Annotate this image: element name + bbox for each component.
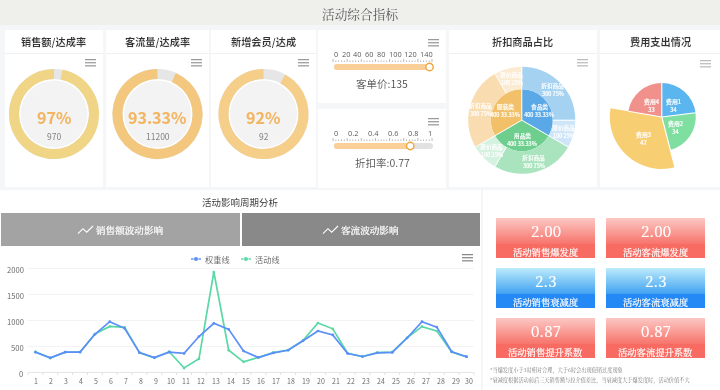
staticText: 20: [317, 376, 325, 386]
staticText: 活动销售提升系数: [508, 345, 583, 358]
staticText: 11: [182, 376, 190, 386]
staticText: 活动线: [255, 253, 280, 265]
staticText: *衰减度根据活动前后三天销售额与拉介值差比，当衰减度大于爆发度时，活动价值不大: [490, 376, 690, 383]
button[interactable]: Chart menu: [577, 59, 588, 67]
staticText: 970: [47, 130, 62, 142]
staticText: 1500: [7, 290, 24, 301]
staticText: 28: [437, 376, 445, 386]
staticText: 92%: [246, 105, 281, 128]
staticText: 原价商品: [500, 71, 523, 79]
staticText: 15: [242, 376, 250, 386]
staticText: 活动综合指标: [322, 4, 399, 22]
staticText: 0.2: [348, 128, 359, 138]
staticText: *当爆发度小于3时相对合理，大于6时会出现促销过度现象: [490, 366, 623, 373]
staticText: 100: [389, 49, 402, 59]
staticText: 活动影响周期分析: [202, 195, 279, 209]
staticText: 活动客流衰减度: [623, 295, 689, 308]
staticText: 费用3: [636, 130, 651, 138]
button[interactable]: 销售额波动影响: [1, 213, 240, 246]
button[interactable]: 2.3: [496, 268, 595, 308]
staticText: 19: [302, 376, 310, 386]
staticText: 食品类: [531, 103, 548, 111]
staticText: 0.87: [641, 320, 671, 342]
staticText: 22: [347, 376, 355, 386]
staticText: 新增会员/达成: [231, 34, 297, 49]
staticText: 300 75%: [542, 90, 564, 98]
staticText: 用品类: [514, 132, 531, 140]
staticText: 0.8: [408, 128, 419, 138]
staticText: 47: [640, 138, 647, 146]
staticText: 客单价:135: [356, 76, 408, 91]
staticText: 2.00: [641, 220, 671, 242]
staticText: 活动销售爆发度: [513, 245, 579, 258]
staticText: 5: [94, 376, 98, 386]
staticText: 100 25%: [481, 151, 503, 159]
button[interactable]: Chart menu: [85, 59, 96, 67]
staticText: 服装类: [497, 103, 514, 111]
staticText: 1000: [7, 316, 24, 327]
staticText: 120: [404, 49, 417, 59]
staticText: 33: [648, 105, 655, 113]
staticText: 原价商品: [552, 124, 575, 132]
staticText: 12: [197, 376, 205, 386]
staticText: 34: [672, 127, 679, 135]
staticText: 93.33%: [128, 105, 187, 128]
button[interactable]: 0.87: [496, 318, 595, 358]
staticText: 400 33.33%: [507, 140, 537, 148]
staticText: 10: [167, 376, 175, 386]
staticText: 活动客流爆发度: [623, 245, 689, 258]
staticText: 2.3: [645, 270, 667, 292]
button[interactable]: Chart menu: [700, 60, 711, 68]
button[interactable]: Chart menu: [462, 254, 473, 262]
staticText: 销售额波动影响: [96, 223, 164, 237]
staticText: 权重线: [205, 253, 230, 265]
staticText: 18: [287, 376, 295, 386]
staticText: 100 25%: [553, 132, 575, 140]
staticText: 客流波动影响: [341, 223, 399, 237]
staticText: 2.3: [535, 270, 557, 292]
staticText: 21: [332, 376, 340, 386]
staticText: 0: [334, 128, 339, 138]
staticText: 1: [34, 376, 38, 386]
staticText: 140: [420, 49, 433, 59]
staticText: 2: [49, 376, 53, 386]
button[interactable]: 2.00: [606, 218, 705, 258]
button[interactable]: 0.87: [606, 318, 705, 358]
staticText: 原价商品: [480, 143, 503, 151]
staticText: 费用支出情况: [630, 34, 692, 49]
staticText: 20: [342, 49, 351, 59]
staticText: 折扣商品: [469, 102, 492, 110]
staticText: 折扣商品: [522, 154, 545, 162]
button[interactable]: 2.3: [606, 268, 705, 308]
button[interactable]: Chart menu: [191, 59, 202, 67]
button[interactable]: Chart menu: [428, 118, 439, 126]
staticText: 费用2: [668, 119, 683, 127]
button[interactable]: 客流波动影响: [242, 213, 480, 246]
staticText: 7: [124, 376, 128, 386]
staticText: 400 33.33%: [524, 111, 554, 119]
staticText: 300 75%: [470, 110, 492, 118]
staticText: 折扣率:0.77: [355, 155, 410, 170]
button[interactable]: 2.00: [496, 218, 595, 258]
staticText: 活动销售衰减度: [513, 295, 579, 308]
staticText: 2000: [7, 264, 24, 275]
staticText: 92: [259, 130, 269, 142]
staticText: 2.00: [531, 220, 561, 242]
staticText: 60: [365, 49, 374, 59]
staticText: 11200: [146, 130, 170, 142]
staticText: 0.4: [368, 128, 379, 138]
staticText: 0: [19, 368, 24, 379]
staticText: 30: [465, 376, 473, 386]
staticText: 4: [79, 376, 83, 386]
staticText: 8: [139, 376, 143, 386]
staticText: 0: [334, 49, 339, 59]
staticText: 客流量/达成率: [125, 34, 191, 49]
staticText: 97%: [37, 105, 72, 128]
staticText: 300 75%: [523, 162, 545, 170]
staticText: 折扣商品占比: [492, 34, 554, 49]
staticText: 3: [64, 376, 68, 386]
staticText: 24: [377, 376, 385, 386]
button[interactable]: Chart menu: [298, 59, 309, 67]
staticText: 16: [257, 376, 265, 386]
button[interactable]: Chart menu: [428, 39, 439, 47]
